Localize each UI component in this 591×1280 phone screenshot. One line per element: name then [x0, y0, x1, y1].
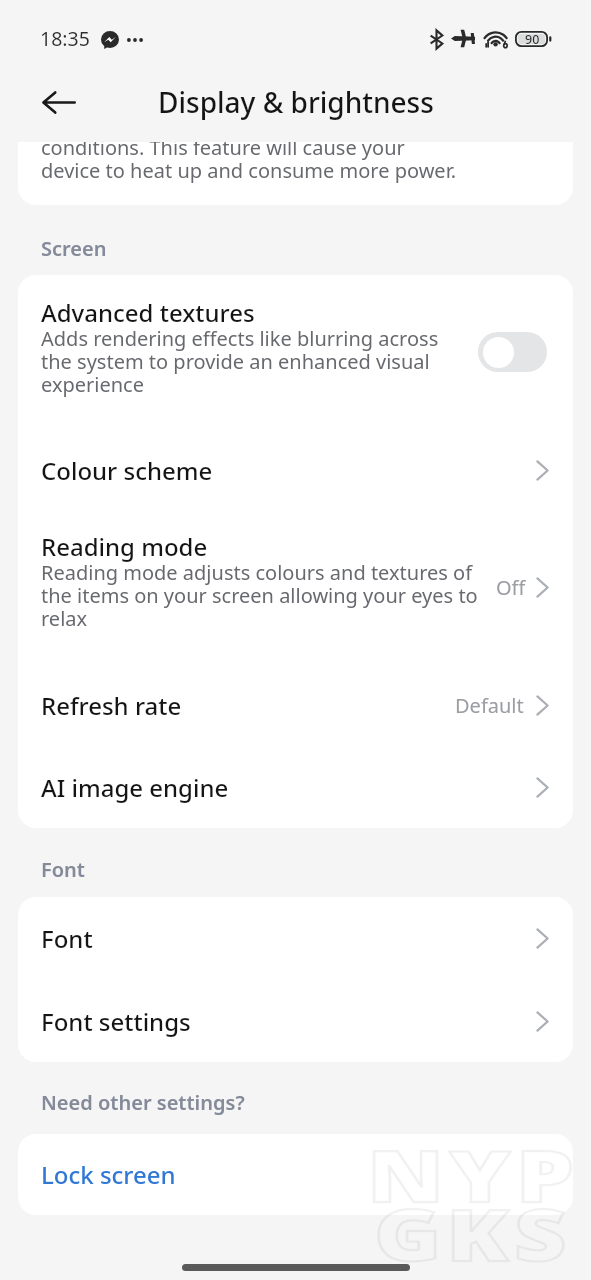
staticText: NYP	[367, 1127, 580, 1223]
staticText: 18:35	[40, 25, 90, 52]
staticText: Font	[41, 856, 85, 883]
button[interactable]: Advanced textures	[18, 275, 573, 429]
staticText: Off	[496, 574, 526, 601]
button[interactable]: conditions. This feature will cause your…	[18, 142, 573, 205]
staticText: conditions. This feature will cause your…	[41, 142, 457, 184]
staticText: Font settings	[41, 1005, 191, 1038]
staticText: Display & brightness	[158, 83, 434, 121]
staticText: Adds rendering effects like blurring acr…	[41, 325, 453, 398]
button[interactable]: Colour scheme	[18, 429, 573, 511]
button[interactable]: Font settings	[18, 980, 573, 1062]
staticText: AI image engine	[41, 771, 229, 804]
staticText: Colour scheme	[41, 454, 213, 487]
button[interactable]: Font	[18, 897, 573, 980]
staticText: Default	[455, 692, 524, 719]
staticText: Refresh rate	[41, 689, 182, 722]
button[interactable]: Advanced textures switch	[478, 332, 547, 372]
staticText: Need other settings?	[41, 1089, 245, 1116]
button[interactable]: Refresh rate	[18, 664, 573, 746]
button[interactable]: AI image engine	[18, 746, 573, 828]
staticText: Screen	[41, 235, 107, 262]
staticText: 90	[525, 31, 540, 47]
staticText: Reading mode adjusts colours and texture…	[41, 559, 487, 632]
staticText: Font	[41, 922, 93, 955]
button[interactable]: Reading mode	[18, 511, 573, 664]
staticText: Lock screen	[41, 1158, 176, 1191]
staticText: GKS	[374, 1186, 572, 1280]
button[interactable]: Lock screen	[18, 1134, 573, 1215]
button[interactable]: Back	[34, 77, 84, 127]
staticText: Advanced textures	[41, 296, 255, 329]
staticText: Reading mode	[41, 530, 208, 563]
